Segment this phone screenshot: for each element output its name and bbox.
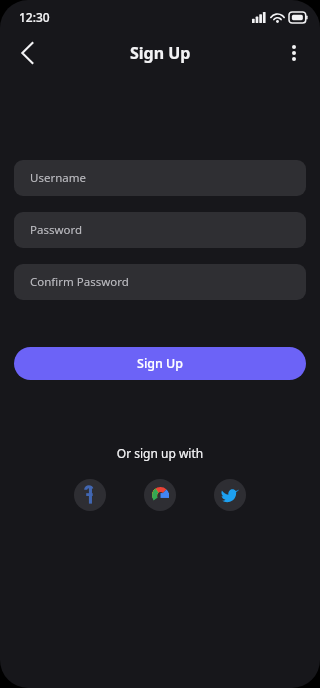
button[interactable]: Sign up with Twitter — [214, 479, 246, 511]
button[interactable]: Sign up with Google — [144, 479, 176, 511]
staticText: Password — [30, 222, 83, 238]
button[interactable]: More options — [276, 35, 312, 71]
staticText: Confirm Password — [30, 274, 129, 290]
button[interactable]: Sign up with Facebook — [74, 479, 106, 511]
button[interactable]: Username — [14, 160, 306, 196]
button[interactable]: Sign Up — [14, 347, 306, 380]
staticText: 12:30 — [19, 9, 50, 25]
staticText: Username — [30, 170, 86, 186]
staticText: Or sign up with — [0, 445, 320, 461]
staticText: Sign Up — [137, 355, 184, 372]
button[interactable]: Confirm Password — [14, 264, 306, 300]
button[interactable]: Password — [14, 212, 306, 248]
button[interactable]: Back — [9, 35, 45, 71]
staticText: Sign Up — [130, 42, 191, 64]
